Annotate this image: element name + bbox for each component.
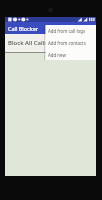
staticText: Add from contacts <box>48 40 86 46</box>
staticText: Add new <box>48 52 66 58</box>
staticText: Block All Calls <box>8 39 48 47</box>
staticText: Add from call logs <box>48 28 86 34</box>
staticText: Call Blocker <box>8 25 39 32</box>
button[interactable]: Add from contacts <box>45 37 96 49</box>
button[interactable]: Block All Calls <box>5 34 96 52</box>
button[interactable]: Add from call logs <box>45 25 96 37</box>
button[interactable]: Add new <box>45 49 96 60</box>
button[interactable]: Call Blocker <box>5 22 96 34</box>
